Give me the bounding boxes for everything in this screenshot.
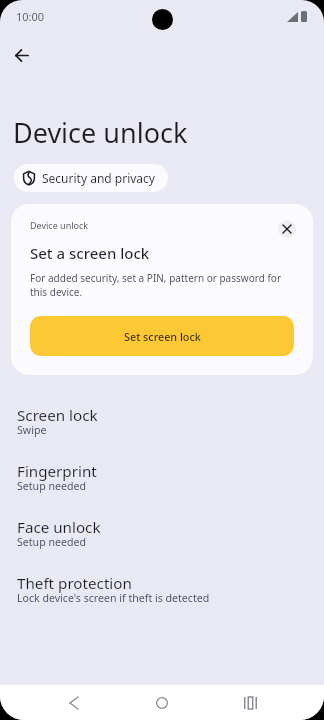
button[interactable]: Theft protection [0,564,324,620]
staticText: Theft protection [17,573,132,594]
button[interactable]: Fingerprint [0,452,324,508]
staticText: 10:00 [16,9,45,24]
button[interactable]: Home [145,686,179,720]
button[interactable]: Back [57,686,91,720]
staticText: Setup needed [17,479,86,493]
staticText: For added security, set a PIN, pattern o… [30,271,294,299]
button[interactable]: Navigate up [3,37,40,74]
staticText: Fingerprint [17,461,97,482]
staticText: Face unlock [17,517,101,538]
staticText: Setup needed [17,535,86,549]
button[interactable]: Face unlock [0,508,324,564]
staticText: Device unlock [13,114,188,151]
staticText: Set screen lock [124,329,201,344]
button[interactable]: Dismiss [278,220,296,238]
button[interactable]: Recent apps [233,686,267,720]
button[interactable]: Screen lock [0,396,324,452]
staticText: Swipe [17,423,47,437]
button[interactable]: Security and privacy [14,164,168,192]
staticText: Security and privacy [42,170,155,186]
staticText: Lock device's screen if theft is detecte… [17,591,210,605]
staticText: Screen lock [17,405,98,426]
staticText: Set a screen lock [30,243,150,263]
button[interactable]: Set screen lock [30,316,294,356]
staticText: Device unlock [30,219,89,231]
